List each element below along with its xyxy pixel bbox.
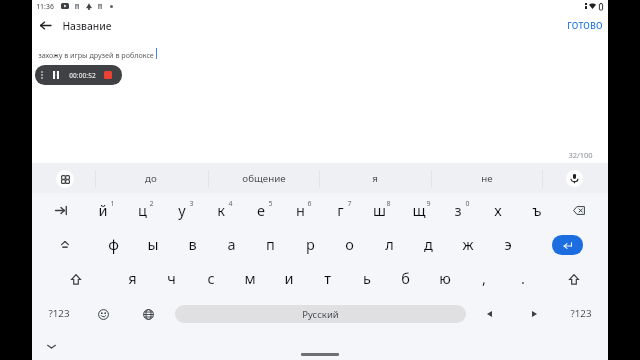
button[interactable]: ц — [122, 193, 162, 227]
staticText: ч — [167, 268, 176, 288]
staticText: р — [306, 234, 315, 254]
staticText: 9 — [426, 199, 431, 209]
staticText: 1 — [110, 199, 115, 209]
button[interactable]: Hide keyboard — [41, 336, 61, 356]
button[interactable]: и — [269, 261, 308, 295]
staticText: ц — [138, 200, 147, 220]
button[interactable]: Back — [34, 14, 57, 37]
button[interactable]: ь — [347, 261, 386, 295]
button[interactable]: Move cursor right — [517, 297, 552, 331]
button[interactable]: щ — [399, 193, 439, 227]
button[interactable]: до — [95, 163, 207, 193]
button[interactable]: з — [438, 193, 478, 227]
button[interactable]: г — [320, 193, 360, 227]
button[interactable]: Stop recording — [100, 65, 116, 85]
button[interactable]: т — [308, 261, 347, 295]
button[interactable]: Voice input — [566, 170, 583, 187]
button[interactable]: о — [330, 227, 369, 261]
button[interactable]: общение — [208, 163, 319, 193]
staticText: захожу в игры друзей в роблоксе — [38, 50, 154, 60]
button[interactable]: не — [431, 163, 543, 193]
button[interactable]: ю — [425, 261, 464, 295]
button[interactable]: Caps lock — [32, 227, 97, 261]
staticText: и — [284, 268, 294, 288]
button[interactable]: ф — [94, 227, 133, 261]
button[interactable]: э — [488, 227, 527, 261]
staticText: . — [521, 268, 525, 288]
button[interactable]: Keyboard switcher — [56, 170, 74, 188]
staticText: 00:00:52 — [69, 71, 96, 80]
button[interactable]: Change keyboard language — [131, 297, 165, 331]
button[interactable]: ж — [448, 227, 487, 261]
staticText: ю — [439, 268, 451, 288]
button[interactable]: е — [241, 193, 281, 227]
button[interactable]: д — [409, 227, 448, 261]
staticText: з — [454, 200, 462, 220]
staticText: п — [266, 234, 275, 254]
button[interactable]: More options — [36, 65, 48, 85]
button[interactable]: п — [251, 227, 290, 261]
button[interactable]: й — [83, 193, 123, 227]
staticText: ы — [147, 234, 159, 254]
button[interactable]: ъ — [517, 193, 557, 227]
staticText: б — [401, 268, 410, 288]
staticText: н — [296, 200, 305, 220]
button[interactable]: с — [191, 261, 230, 295]
button[interactable]: . — [503, 261, 542, 295]
staticText: Название — [62, 19, 112, 33]
button[interactable]: а — [212, 227, 251, 261]
button[interactable]: м — [230, 261, 269, 295]
button[interactable]: н — [280, 193, 320, 227]
staticText: общение — [242, 172, 286, 185]
button[interactable]: х — [478, 193, 518, 227]
staticText: 7 — [347, 199, 352, 209]
staticText: о — [345, 234, 354, 254]
staticText: ?123 — [48, 307, 70, 320]
button[interactable]: Tab — [32, 193, 89, 227]
staticText: у — [178, 200, 186, 220]
button[interactable]: ш — [359, 193, 399, 227]
staticText: 6 — [307, 199, 312, 209]
button[interactable]: я — [113, 261, 152, 295]
button[interactable]: Pause — [49, 65, 63, 85]
button[interactable]: р — [291, 227, 330, 261]
button[interactable]: ГОТОВО — [555, 15, 608, 37]
button[interactable]: у — [162, 193, 202, 227]
button[interactable]: Enter — [552, 235, 583, 255]
button[interactable]: Русский — [175, 305, 466, 323]
button[interactable]: я — [319, 163, 431, 193]
button[interactable]: Backspace — [559, 193, 599, 227]
staticText: ф — [108, 234, 119, 254]
staticText: ш — [373, 200, 386, 220]
button[interactable]: Shift — [32, 262, 119, 296]
button[interactable]: ы — [133, 227, 172, 261]
staticText: Русский — [302, 308, 339, 321]
staticText: я — [372, 172, 378, 185]
staticText: , — [482, 268, 486, 288]
button[interactable]: More options — [35, 65, 122, 85]
staticText: а — [227, 234, 236, 254]
button[interactable]: в — [173, 227, 212, 261]
button[interactable]: Move cursor left — [472, 297, 507, 331]
staticText: ъ — [532, 200, 542, 220]
staticText: ж — [462, 234, 474, 254]
staticText: до — [145, 172, 157, 185]
staticText: 4 — [228, 199, 233, 209]
button[interactable]: ч — [152, 261, 191, 295]
staticText: 3 — [189, 199, 194, 209]
staticText: л — [385, 234, 394, 254]
staticText: ?123 — [570, 307, 592, 320]
staticText: ь — [363, 268, 371, 288]
staticText: в — [188, 234, 197, 254]
button[interactable]: ?123 — [554, 296, 608, 330]
button[interactable]: , — [464, 261, 503, 295]
staticText: 8 — [386, 199, 391, 209]
staticText: э — [504, 234, 512, 254]
button[interactable]: л — [370, 227, 409, 261]
button[interactable]: ?123 — [32, 296, 86, 330]
staticText: ГОТОВО — [567, 20, 603, 32]
button[interactable]: б — [386, 261, 425, 295]
button[interactable]: к — [201, 193, 241, 227]
button[interactable]: Emoji — [86, 297, 120, 331]
button[interactable]: Shift — [554, 262, 594, 296]
